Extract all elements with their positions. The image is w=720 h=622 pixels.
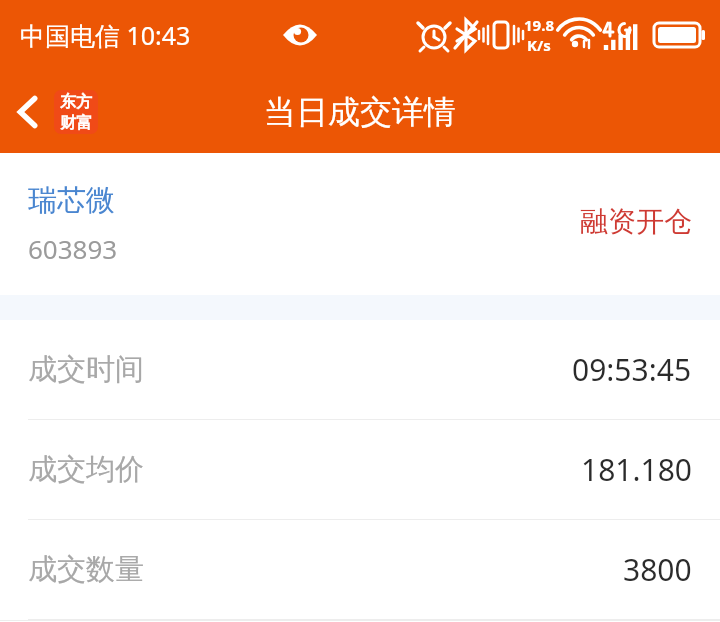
staticText: 181.180 (581, 449, 692, 490)
button[interactable]: 成交时间 (0, 320, 720, 420)
staticText: 成交时间 (28, 351, 144, 388)
button[interactable]: 成交均价 (0, 420, 720, 520)
staticText: 成交数量 (28, 551, 144, 588)
staticText: 融资开仓 (580, 204, 692, 239)
button[interactable]: 成交数量 (0, 520, 720, 620)
staticText: 中国电信 10:43 (20, 18, 191, 52)
staticText: 3800 (623, 549, 692, 590)
staticText: 瑞芯微 (28, 182, 115, 219)
staticText: K/s (527, 35, 551, 55)
button[interactable]: 东方财富 (54, 90, 98, 134)
button[interactable]: Back (0, 81, 56, 143)
staticText: 603893 (28, 231, 118, 266)
staticText: 东方 (60, 92, 92, 112)
staticText: 财富 (60, 113, 92, 133)
staticText: 09:53:45 (572, 349, 692, 390)
staticText: 当日成交详情 (264, 92, 456, 132)
staticText: 19.8 (524, 15, 554, 35)
button[interactable]: 瑞芯微 (0, 153, 720, 295)
staticText: 成交均价 (28, 451, 144, 488)
